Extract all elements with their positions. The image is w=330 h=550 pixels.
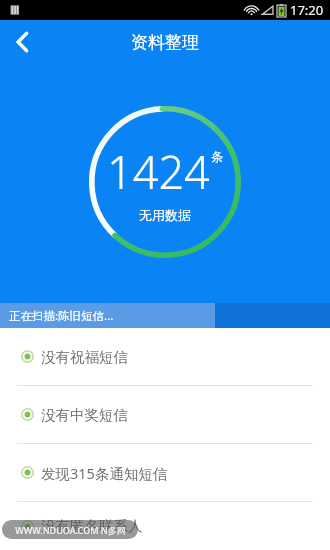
- staticText: 条: [211, 149, 223, 164]
- staticText: 没有匿名联系人: [41, 517, 143, 535]
- button[interactable]: 没有匿名联系人: [0, 502, 330, 550]
- staticText: 17:20: [290, 1, 324, 19]
- button[interactable]: 发现315条通知短信: [0, 444, 330, 501]
- staticText: 没有祝福短信: [41, 348, 128, 366]
- staticText: 1424: [107, 141, 210, 202]
- staticText: WWW.NDUOA.COM N多网: [15, 524, 126, 536]
- staticText: 正在扫描:陈旧短信...: [9, 308, 114, 324]
- button[interactable]: 没有祝福短信: [0, 328, 330, 385]
- button[interactable]: Back: [0, 20, 44, 64]
- staticText: 资料整理: [131, 32, 199, 53]
- staticText: 发现315条通知短信: [41, 463, 168, 483]
- staticText: 无用数据: [139, 207, 191, 223]
- staticText: 没有中奖短信: [41, 406, 128, 424]
- button[interactable]: 没有中奖短信: [0, 386, 330, 443]
